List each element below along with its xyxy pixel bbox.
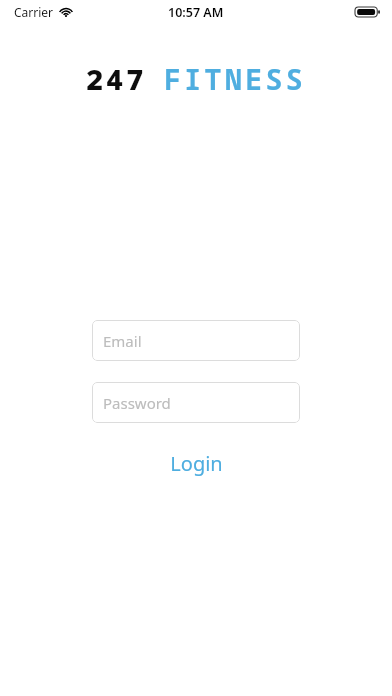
button[interactable]: Email bbox=[92, 320, 300, 361]
staticText: FITNESS bbox=[164, 60, 307, 98]
other: Battery full bbox=[355, 6, 380, 18]
button[interactable]: Password bbox=[92, 382, 300, 423]
staticText: Carrier bbox=[14, 4, 54, 20]
button[interactable]: Login bbox=[0, 443, 392, 483]
staticText: Email bbox=[103, 331, 142, 351]
staticText: 10:57 AM bbox=[168, 4, 224, 21]
other: Wi-Fi signal bbox=[59, 7, 73, 17]
staticText: Login bbox=[170, 450, 223, 477]
staticText: 247 bbox=[86, 60, 147, 98]
staticText: Password bbox=[103, 393, 171, 413]
